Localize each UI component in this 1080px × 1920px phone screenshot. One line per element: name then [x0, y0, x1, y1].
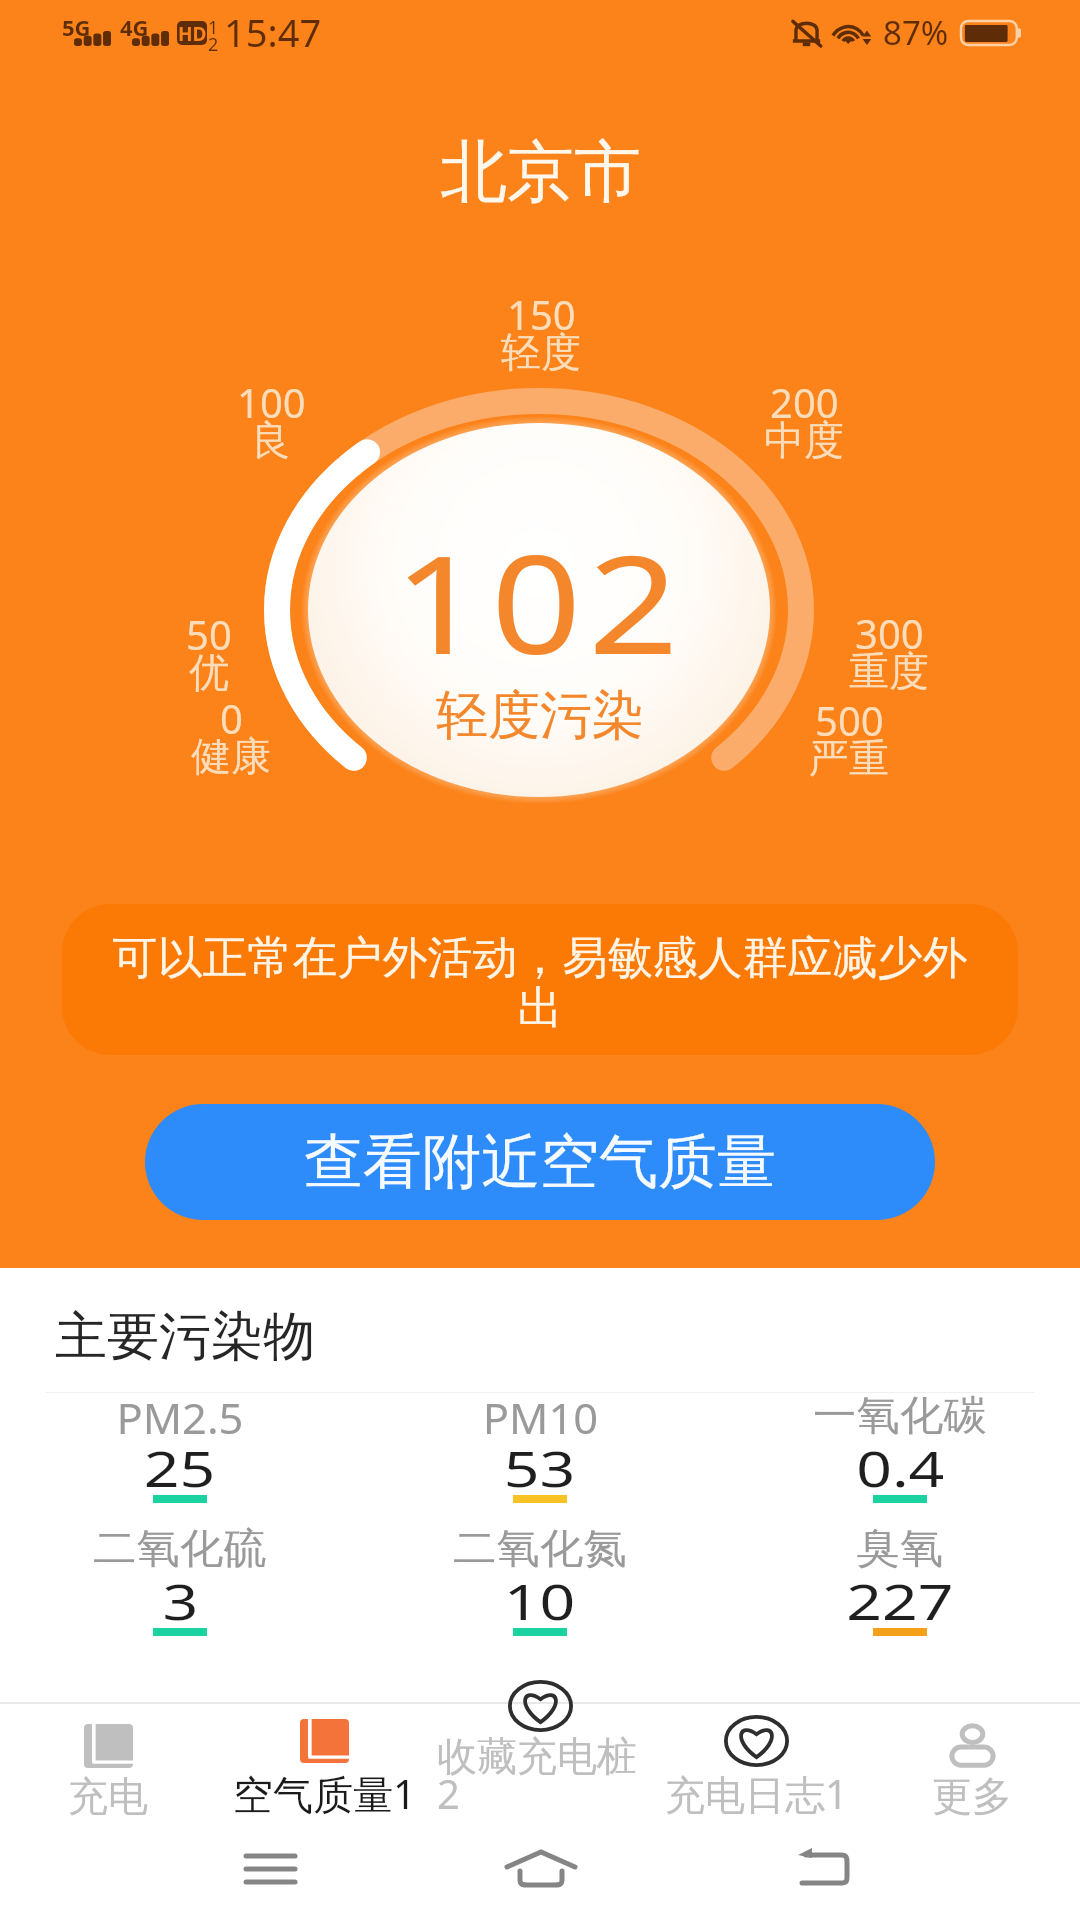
- staticText: 一氧化碳: [813, 1390, 987, 1442]
- staticText: 收藏充电桩2: [437, 1731, 643, 1821]
- button[interactable]: Favourite: [648, 1702, 864, 1831]
- staticText: 200: [770, 375, 839, 429]
- staticText: 查看附近空气质量: [304, 1125, 776, 1199]
- staticText: 0.4: [856, 1434, 945, 1502]
- staticText: 3: [162, 1567, 199, 1635]
- staticText: 4G: [120, 12, 149, 42]
- staticText: 健康: [191, 731, 271, 781]
- staticText: 良: [251, 415, 291, 465]
- other: More: [948, 1724, 997, 1768]
- staticText: 可以正常在户外活动，易敏感人群应减少外出: [102, 930, 978, 1037]
- staticText: 二氧化硫: [93, 1523, 267, 1575]
- staticText: 227: [846, 1567, 954, 1635]
- staticText: 102: [394, 509, 686, 694]
- button[interactable]: Favourite: [432, 1702, 648, 1831]
- staticText: 主要污染物: [55, 1304, 315, 1370]
- staticText: 10: [504, 1567, 576, 1635]
- staticText: 北京市: [440, 130, 641, 214]
- staticText: 充电: [68, 1771, 148, 1821]
- staticText: 53: [504, 1434, 576, 1502]
- other: Favourite: [724, 1715, 789, 1767]
- staticText: 300: [855, 606, 924, 660]
- staticText: 5G: [62, 12, 91, 42]
- staticText: 优: [189, 647, 229, 697]
- staticText: 500: [815, 693, 884, 747]
- staticText: 空气质量1: [233, 1766, 416, 1821]
- staticText: 150: [507, 287, 576, 341]
- staticText: PM2.5: [116, 1390, 244, 1446]
- staticText: 充电日志1: [665, 1766, 848, 1821]
- button[interactable]: More: [864, 1702, 1080, 1831]
- staticText: 0: [220, 691, 243, 745]
- staticText: 87%: [883, 10, 949, 55]
- staticText: 重度: [849, 646, 929, 696]
- staticText: 二氧化氮: [453, 1523, 627, 1575]
- staticText: 更多: [932, 1771, 1012, 1821]
- button[interactable]: 查看附近空气质量: [145, 1104, 935, 1220]
- staticText: 15:47: [224, 6, 322, 58]
- button[interactable]: 空气质量1: [216, 1702, 432, 1831]
- staticText: HD: [178, 21, 207, 45]
- staticText: 1: [208, 15, 219, 40]
- staticText: 轻度污染: [436, 683, 644, 749]
- staticText: 严重: [809, 733, 889, 783]
- other: Favourite: [508, 1680, 573, 1732]
- staticText: 轻度: [501, 327, 581, 377]
- button[interactable]: 可以正常在户外活动，易敏感人群应减少外出: [62, 904, 1018, 1055]
- staticText: 臭氧: [856, 1523, 943, 1575]
- staticText: 中度: [764, 415, 844, 465]
- staticText: 25: [144, 1434, 216, 1502]
- staticText: 2: [208, 32, 219, 57]
- staticText: PM10: [483, 1390, 598, 1446]
- button[interactable]: 充电: [0, 1702, 216, 1831]
- staticText: 100: [237, 375, 306, 429]
- staticText: 50: [186, 607, 232, 661]
